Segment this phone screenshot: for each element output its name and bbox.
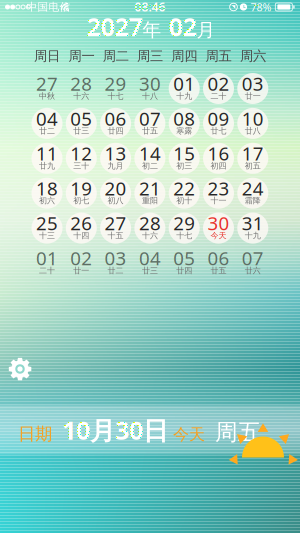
staticText: 十四 (73, 231, 89, 240)
staticText: 廿一 (73, 266, 89, 275)
staticText: 周四 (171, 48, 197, 64)
staticText: 2027 (86, 9, 142, 43)
staticText: 04 (36, 106, 58, 131)
staticText: 30 (207, 211, 229, 235)
staticText: 初三 (176, 161, 192, 171)
staticText: 02 (161, 9, 196, 43)
staticText: 廿三 (142, 266, 158, 275)
staticText: 十七 (108, 91, 124, 101)
staticText: 十六 (73, 91, 89, 101)
staticText: 初八 (108, 196, 124, 206)
staticText: 中国电信 (26, 0, 70, 13)
staticText: 14 (139, 141, 161, 166)
staticText: 初二 (142, 161, 158, 171)
staticText: 今天 (173, 425, 205, 444)
staticText: 月 (196, 18, 215, 41)
staticText: 初十 (176, 196, 192, 206)
staticText: 二十 (39, 266, 55, 275)
staticText: 九月 (108, 161, 124, 171)
staticText: 十五 (108, 231, 124, 240)
staticText: 08 (173, 106, 195, 131)
staticText: 13 (105, 141, 127, 166)
staticText: 31 (242, 211, 264, 235)
staticText: 十八 (142, 91, 158, 101)
staticText: 23 (207, 176, 229, 201)
staticText: 02 (70, 246, 92, 270)
staticText: 05 (70, 106, 92, 131)
staticText: 二十 (210, 91, 226, 101)
staticText: 04 (139, 246, 161, 270)
staticText: 19 (70, 176, 92, 201)
staticText: 十七 (176, 231, 192, 240)
staticText: 07 (242, 246, 264, 270)
staticText: 03 (242, 71, 264, 96)
staticText: 今天 (210, 231, 226, 240)
staticText: 26 (70, 211, 92, 235)
staticText: 廿九 (39, 161, 55, 171)
staticText: 廿二 (39, 126, 55, 136)
staticText: 十九 (176, 91, 192, 101)
staticText: 廿三 (73, 126, 89, 136)
staticText (205, 422, 215, 445)
staticText: 初四 (210, 161, 226, 171)
staticText: 16 (207, 141, 229, 166)
staticText: 周二 (103, 48, 129, 64)
staticText: 12 (70, 141, 92, 166)
staticText: 十六 (142, 231, 158, 240)
staticText: 年 (142, 18, 161, 41)
staticText: 29 (105, 71, 127, 96)
staticText: 01 (173, 71, 195, 96)
staticText: 廿七 (210, 126, 226, 136)
staticText: 08:46 (134, 0, 165, 15)
staticText: 廿四 (108, 126, 124, 136)
staticText: 廿四 (176, 266, 192, 275)
staticText: 10月30日 (62, 413, 168, 447)
staticText: 初五 (245, 161, 261, 171)
staticText: 10 (242, 106, 264, 131)
staticText: 周一 (68, 48, 94, 64)
staticText: 廿六 (245, 266, 261, 275)
staticText: 22 (173, 176, 195, 201)
staticText: 廿一 (245, 91, 261, 101)
staticText: 27 (105, 211, 127, 235)
staticText: 01 (36, 246, 58, 270)
staticText: 日期 (18, 423, 52, 445)
staticText: 18 (36, 176, 58, 201)
staticText (52, 422, 62, 445)
staticText: 29 (173, 211, 195, 235)
staticText: 廿五 (210, 266, 226, 275)
staticText: 廿八 (245, 126, 261, 136)
staticText: 27 (36, 71, 58, 96)
staticText: 11 (36, 141, 58, 166)
staticText: 20 (105, 176, 127, 201)
staticText: 初六 (39, 196, 55, 206)
staticText: 周日 (34, 48, 60, 64)
staticText: 15 (173, 141, 195, 166)
staticText: 03 (105, 246, 127, 270)
staticText: 周五 (206, 48, 232, 64)
staticText: 30 (139, 71, 161, 96)
staticText: 28 (139, 211, 161, 235)
staticText: 初七 (73, 196, 89, 206)
staticText: 17 (242, 141, 264, 166)
staticText: 三十 (73, 161, 89, 171)
staticText: 07 (139, 106, 161, 131)
staticText: 周五 (215, 418, 261, 446)
staticText: 06 (207, 246, 229, 270)
staticText: 霜降 (245, 196, 261, 206)
staticText: 25 (36, 211, 58, 235)
staticText: 21 (139, 176, 161, 201)
button[interactable]: Settings (0, 349, 40, 389)
staticText: 周六 (240, 48, 266, 64)
staticText: 05 (173, 246, 195, 270)
staticText: 廿五 (142, 126, 158, 136)
staticText: 02 (207, 71, 229, 96)
staticText: 周三 (137, 48, 163, 64)
staticText: 十九 (245, 231, 261, 240)
staticText: 06 (105, 106, 127, 131)
staticText: 十一 (210, 196, 226, 206)
staticText: 十三 (39, 231, 55, 240)
staticText (168, 422, 173, 445)
staticText: 中秋 (39, 91, 55, 101)
staticText: 重阳 (142, 196, 158, 206)
